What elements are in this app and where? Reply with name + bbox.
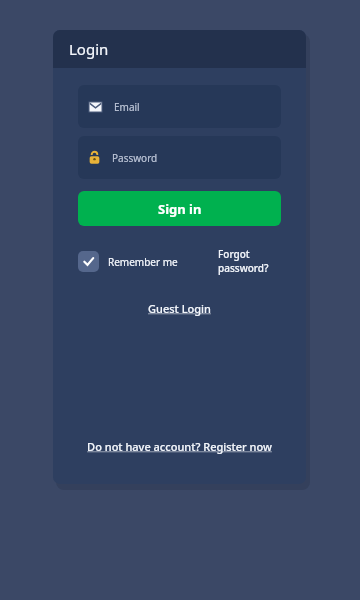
button[interactable]: Forgot password?	[218, 247, 281, 275]
staticText: Login	[69, 39, 109, 59]
button[interactable]: Do not have account? Register now	[83, 435, 276, 458]
staticText: Remember me	[108, 255, 178, 269]
staticText: Do not have account? Register now	[87, 439, 272, 454]
staticText: Password	[112, 151, 158, 165]
staticText: Forgot password?	[218, 247, 281, 275]
staticText: Email	[114, 100, 140, 114]
button[interactable]: Guest Login	[144, 297, 215, 320]
button[interactable]: Sign in	[78, 191, 281, 226]
button[interactable]: Remember me	[78, 251, 178, 272]
staticText: Guest Login	[148, 301, 211, 316]
staticText: Sign in	[158, 200, 202, 218]
button[interactable]: Password	[78, 136, 281, 179]
button[interactable]: Email	[78, 85, 281, 128]
